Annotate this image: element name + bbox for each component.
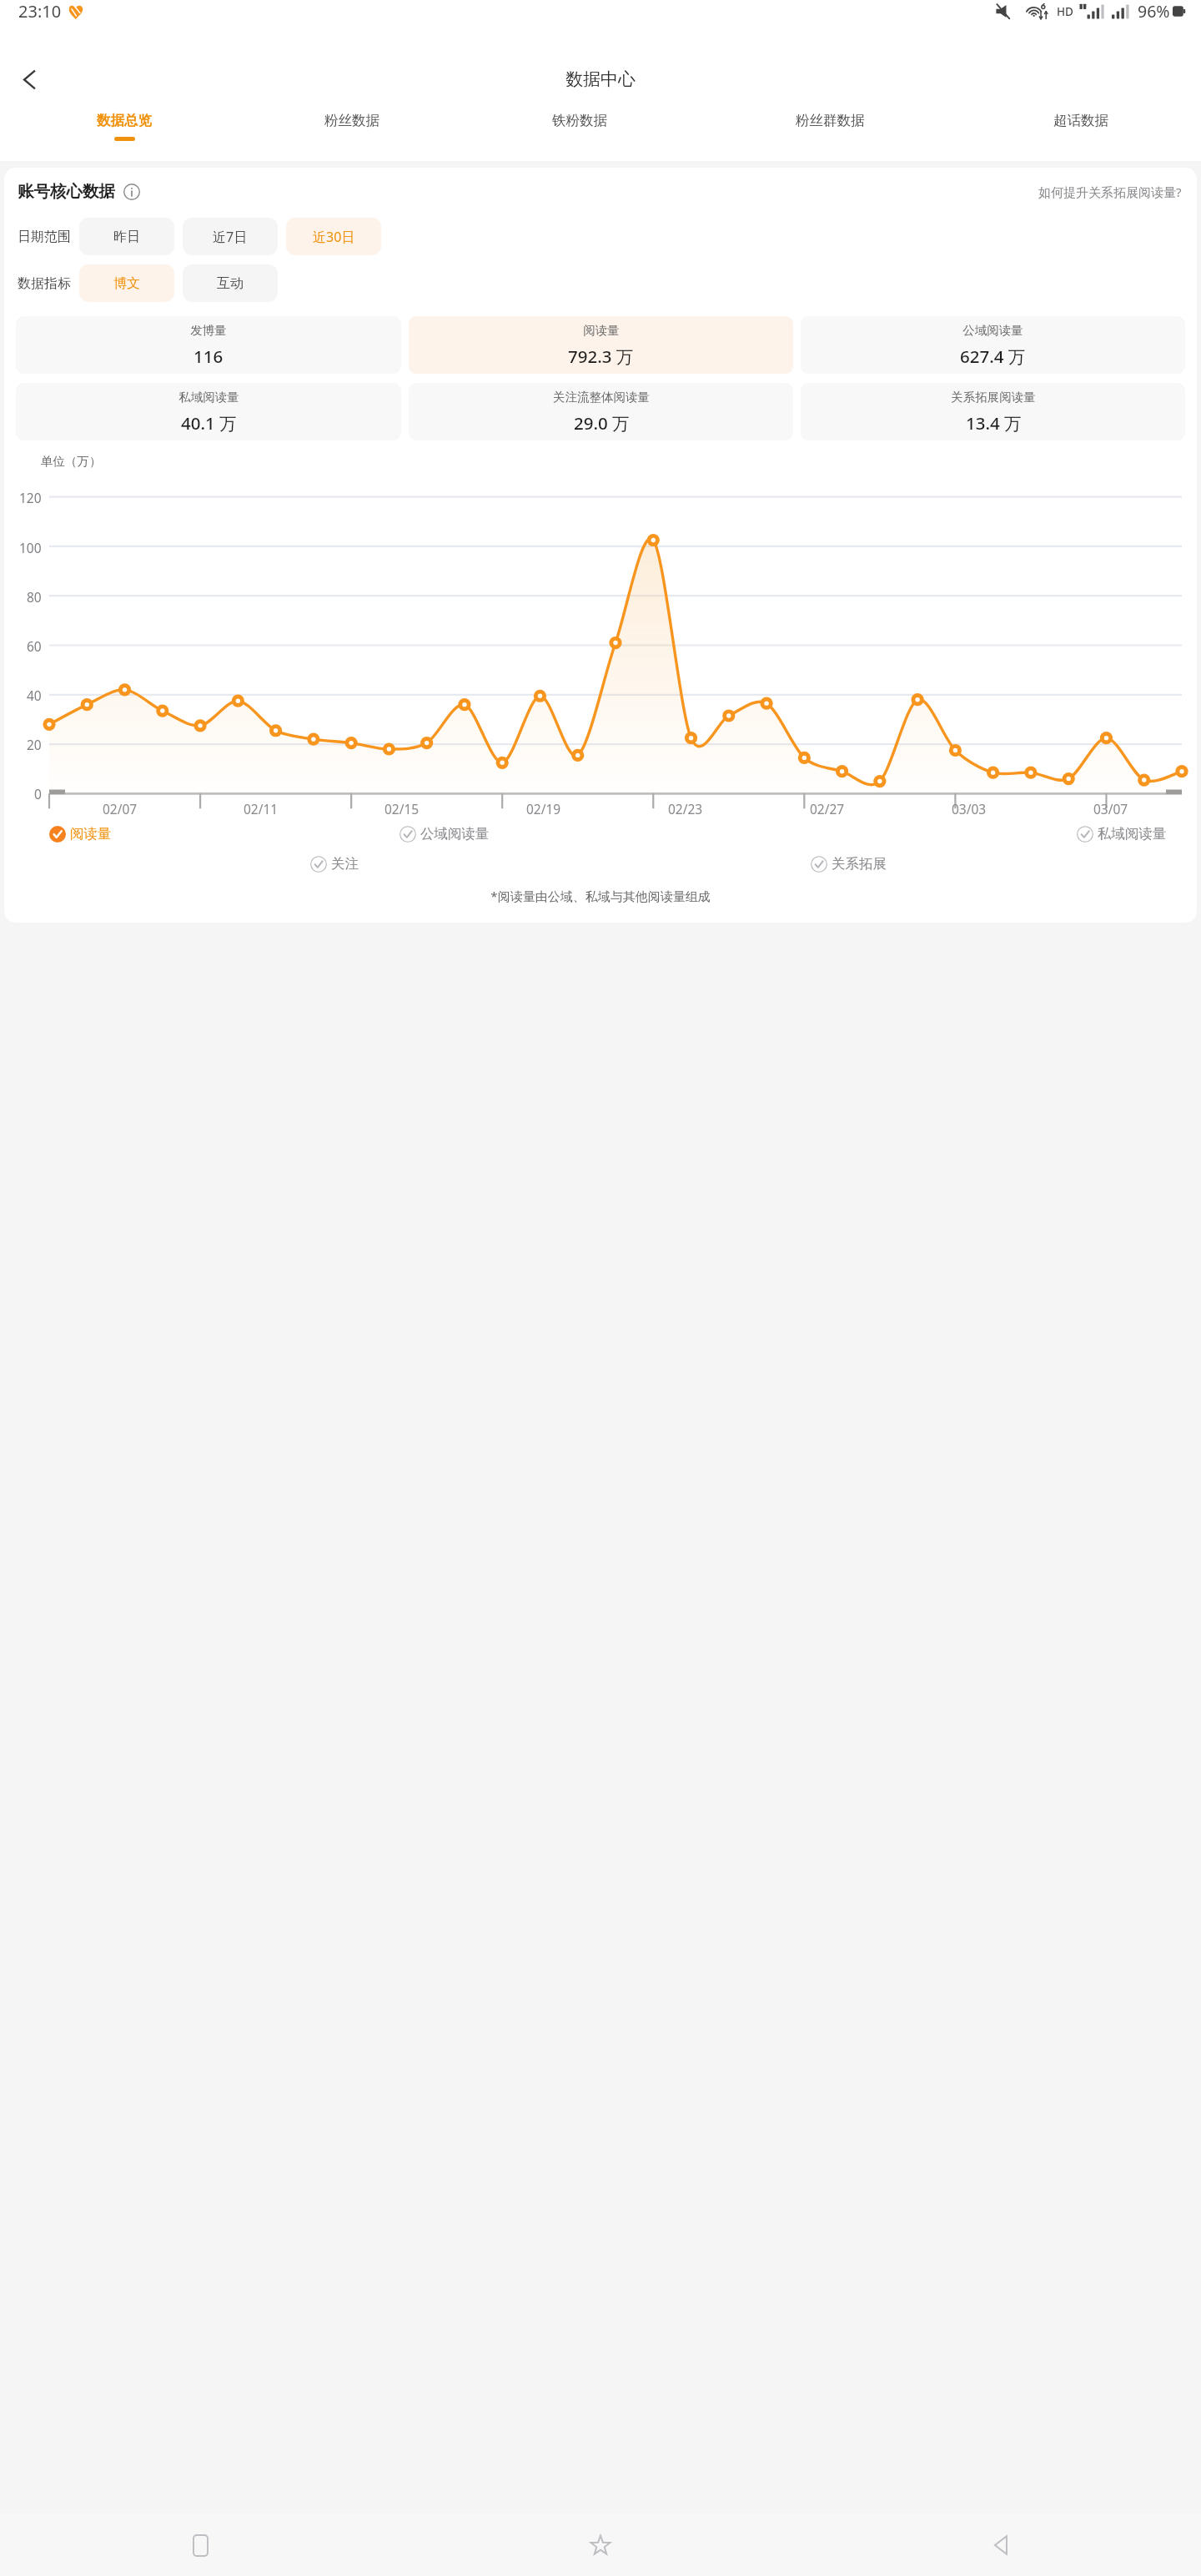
staticText: 私域阅读量 (1098, 825, 1167, 843)
staticText: 03/07 (1093, 800, 1128, 818)
staticText: 昨日 (113, 229, 140, 245)
staticText: 02/19 (526, 800, 561, 818)
staticText: 粉丝群数据 (796, 112, 865, 129)
staticText: 116 (193, 345, 224, 368)
staticText: 阅读量 (583, 323, 620, 338)
staticText: 60 (27, 637, 42, 655)
staticText: 单位（万） (41, 454, 102, 469)
button[interactable]: 博文 (79, 264, 174, 302)
staticText: 阅读量 (70, 825, 112, 843)
button[interactable]: 互动 (183, 264, 278, 302)
button[interactable]: 关系拓展阅读量 (801, 383, 1185, 440)
button[interactable]: 说明 (121, 181, 142, 202)
button[interactable]: 粉丝群数据 (693, 108, 967, 161)
staticText: 02/07 (103, 800, 138, 818)
staticText: 02/15 (384, 800, 420, 818)
staticText: 29.0 万 (574, 411, 630, 435)
staticText: 40.1 万 (181, 411, 237, 435)
button[interactable]: Favorites (400, 2514, 801, 2576)
staticText: 粉丝数据 (324, 112, 379, 129)
button[interactable]: 近30日 (286, 218, 381, 255)
button[interactable]: 关系拓展 (811, 855, 887, 873)
button[interactable]: 私域阅读量 (1077, 825, 1167, 843)
button[interactable]: 公域阅读量 (399, 825, 490, 843)
staticText: 数据总览 (97, 112, 152, 129)
button[interactable]: Back (5, 55, 53, 103)
staticText: 0 (34, 785, 42, 802)
button[interactable]: 铁粉数据 (465, 108, 693, 161)
staticText: 公域阅读量 (962, 323, 1023, 338)
staticText: 792.3 万 (568, 345, 634, 368)
button[interactable]: Recents (0, 2514, 400, 2576)
staticText: 发博量 (190, 323, 227, 338)
staticText: 23:10 (18, 0, 62, 23)
staticText: 20 (27, 736, 42, 753)
button[interactable]: 数据总览 (10, 108, 238, 161)
staticText: 02/11 (244, 800, 279, 818)
staticText: 02/23 (668, 800, 703, 818)
staticText: *阅读量由公域、私域与其他阅读量组成 (4, 888, 1197, 904)
staticText: 数据中心 (565, 68, 636, 90)
staticText: HD (1057, 4, 1073, 19)
staticText: 96% (1138, 0, 1170, 23)
staticText: 40 (27, 687, 42, 704)
staticText: 近7日 (213, 228, 248, 246)
staticText: 数据指标 (18, 275, 71, 292)
button[interactable]: 发博量 (16, 316, 401, 374)
staticText: 超话数据 (1053, 112, 1108, 129)
staticText: 627.4 万 (960, 345, 1026, 368)
staticText: 公域阅读量 (420, 825, 490, 843)
staticText: 100 (19, 539, 42, 556)
button[interactable]: 关注流整体阅读量 (409, 383, 793, 440)
staticText: 近30日 (313, 228, 355, 246)
staticText: 关注流整体阅读量 (553, 390, 650, 405)
button[interactable]: 公域阅读量 (801, 316, 1185, 374)
staticText: 账号核心数据 (18, 181, 115, 202)
button[interactable]: 粉丝数据 (238, 108, 465, 161)
button[interactable]: 超话数据 (967, 108, 1194, 161)
button[interactable]: 阅读量 (409, 316, 793, 374)
staticText: 私域阅读量 (178, 390, 239, 405)
button[interactable]: 关注 (310, 855, 359, 873)
staticText: 80 (27, 588, 42, 606)
button[interactable]: 私域阅读量 (16, 383, 401, 440)
button[interactable]: 如何提升关系拓展阅读量? (1038, 184, 1182, 200)
staticText: 13.4 万 (966, 411, 1022, 435)
button[interactable]: 近7日 (183, 218, 278, 255)
staticText: 互动 (217, 275, 244, 292)
staticText: 如何提升关系拓展阅读量? (1038, 184, 1182, 200)
staticText: 博文 (113, 275, 140, 292)
staticText: 03/03 (952, 800, 987, 818)
staticText: 关系拓展 (832, 855, 887, 873)
staticText: 关系拓展阅读量 (951, 390, 1036, 405)
button[interactable]: 昨日 (79, 218, 174, 255)
staticText: 关注 (331, 855, 359, 873)
staticText: 02/27 (810, 800, 845, 818)
staticText: 日期范围 (18, 229, 71, 245)
staticText: 120 (19, 489, 42, 506)
button[interactable]: 阅读量 (49, 825, 112, 843)
staticText: 铁粉数据 (552, 112, 607, 129)
